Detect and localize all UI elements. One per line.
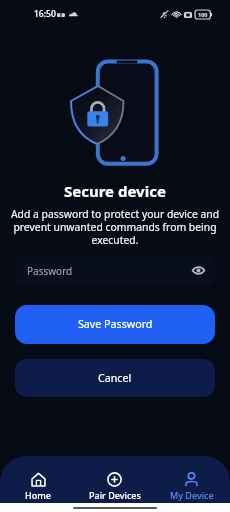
staticText: My Device (170, 489, 214, 501)
button[interactable]: Show password (191, 263, 206, 278)
button[interactable]: Pair Devices (76, 472, 153, 501)
staticText: 100 (198, 11, 208, 18)
staticText: 16:50 (34, 8, 56, 20)
staticText: Home (25, 489, 51, 501)
staticText: Pair Devices (89, 489, 141, 501)
button[interactable]: Cancel (15, 359, 215, 397)
staticText: Password (27, 264, 73, 278)
button[interactable]: Home (0, 472, 76, 501)
staticText: Add a password to protect your device an… (6, 207, 224, 247)
staticText: Secure device (64, 181, 166, 201)
button[interactable]: My Device (153, 472, 230, 501)
button[interactable]: Password (15, 256, 215, 285)
staticText: Cancel (98, 371, 132, 386)
staticText: Save Password (78, 317, 153, 332)
button[interactable]: Save Password (15, 305, 215, 344)
